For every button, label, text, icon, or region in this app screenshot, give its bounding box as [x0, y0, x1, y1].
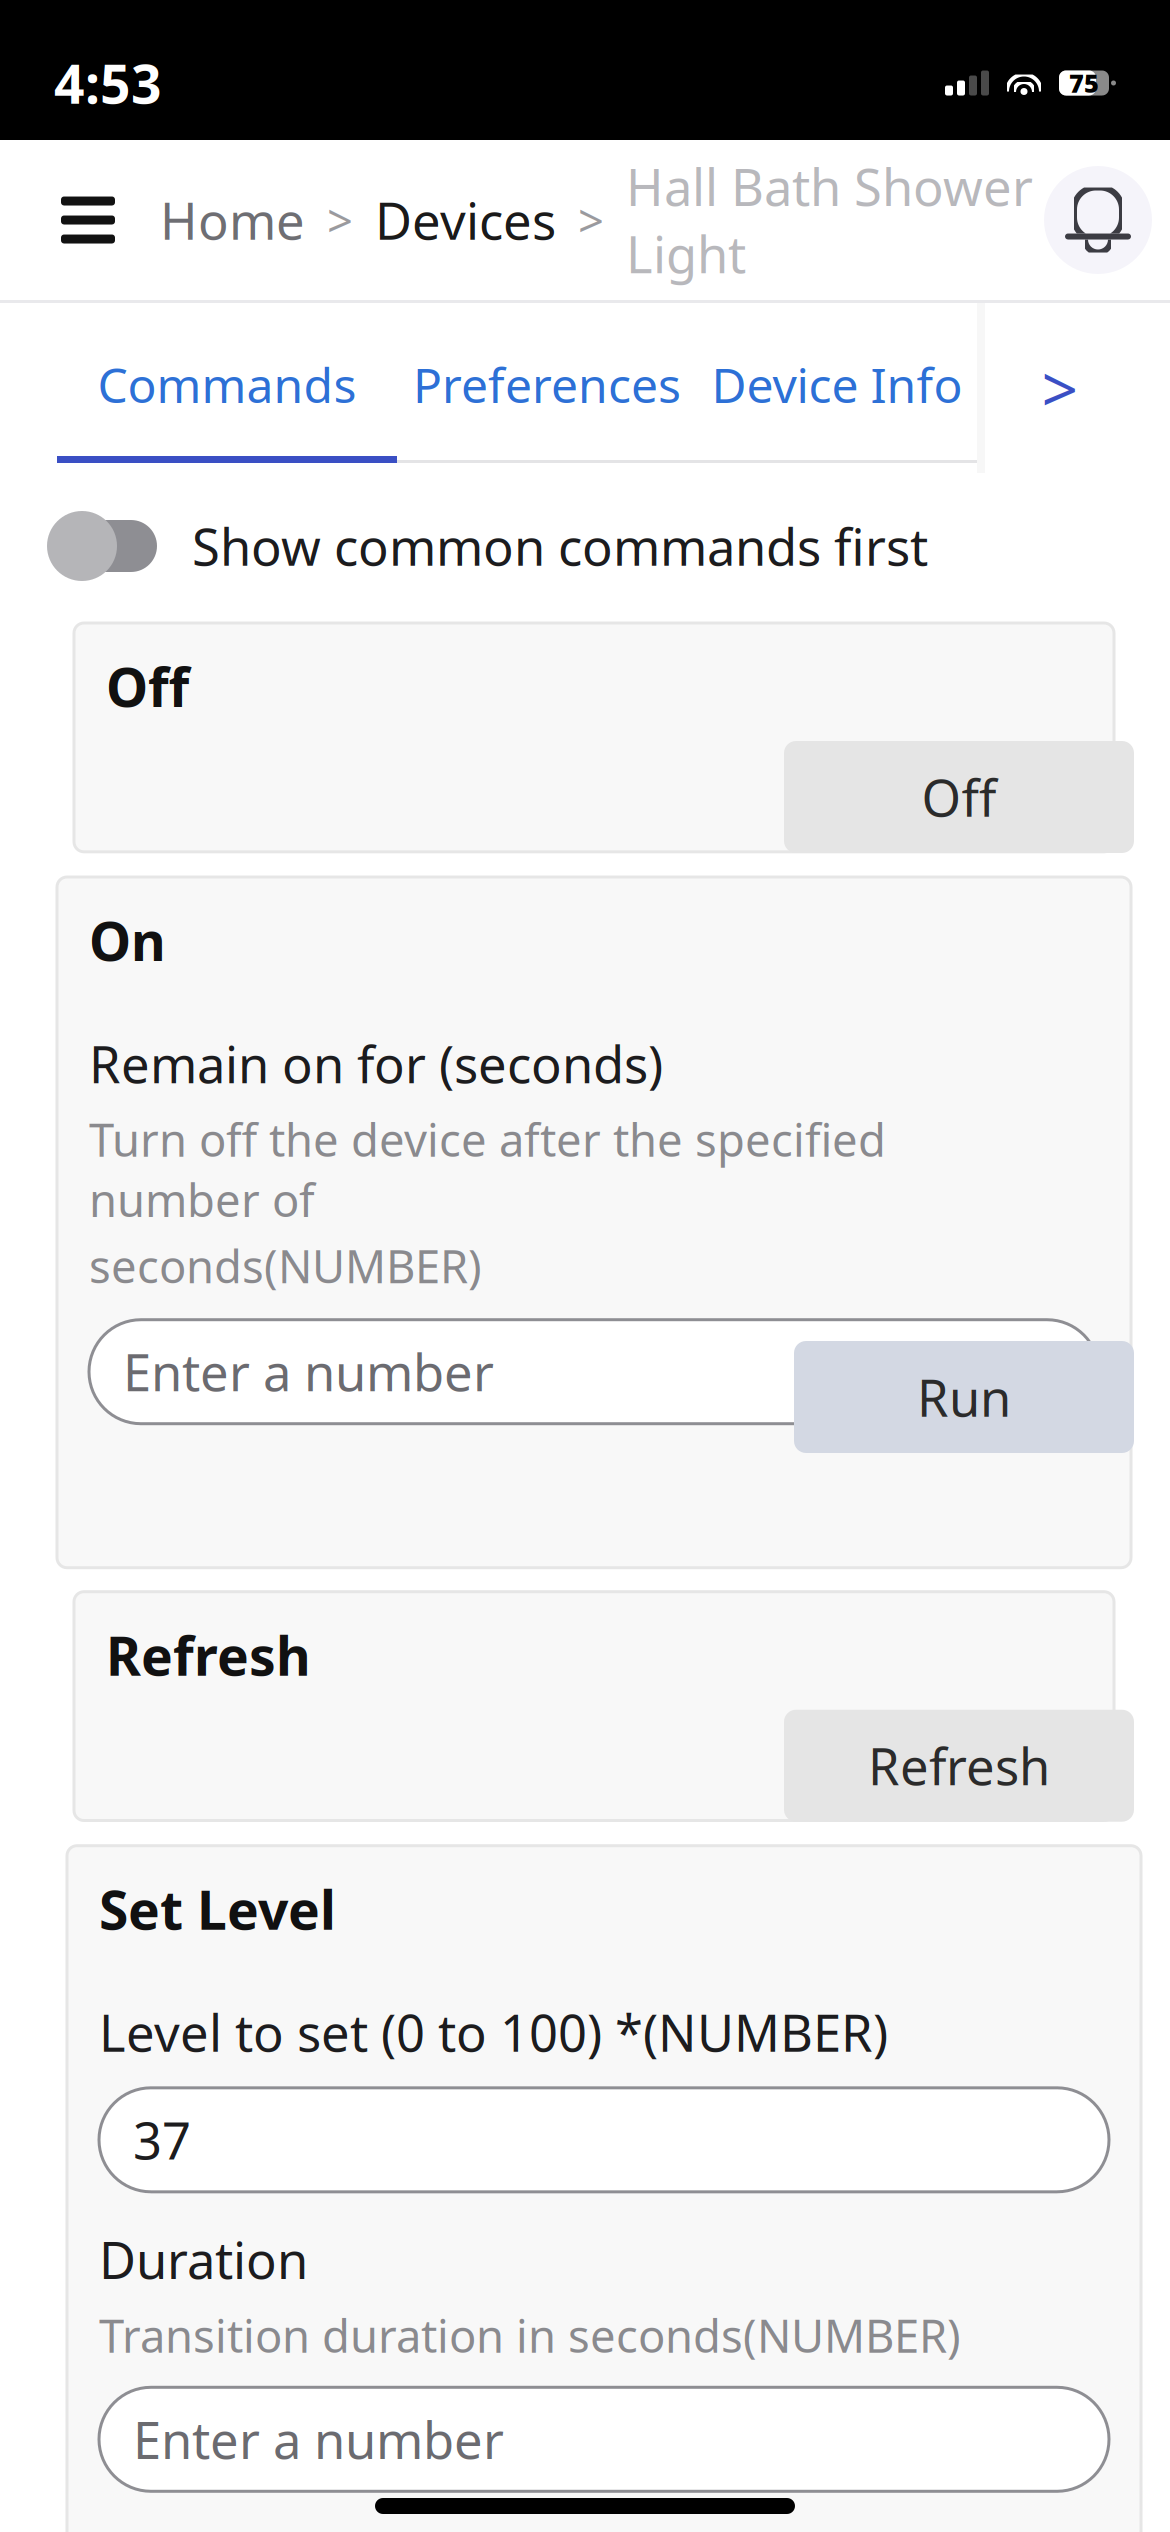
staticText: Off [106, 651, 189, 722]
staticText: On [89, 905, 166, 976]
staticText: Refresh [106, 1620, 311, 1690]
staticText: Device Info [711, 353, 962, 416]
staticText: Refresh [868, 1732, 1050, 1799]
staticText: Set Level [99, 1874, 336, 1944]
staticText: 37 [133, 2106, 191, 2173]
staticText: > [1041, 345, 1078, 430]
staticText: Home [160, 186, 305, 254]
button[interactable]: Home [160, 186, 305, 254]
button[interactable]: Show common commands first [0, 491, 1170, 601]
staticText: Show common commands first [192, 512, 928, 580]
button[interactable]: Devices [375, 186, 556, 254]
staticText: Transition duration in seconds(NUMBER) [99, 2305, 961, 2365]
staticText: seconds(NUMBER) [89, 1235, 482, 1296]
staticText: Devices [375, 186, 556, 254]
button[interactable]: 37 [99, 2088, 1109, 2192]
staticText: Level to set (0 to 100) *(NUMBER) [99, 1998, 888, 2066]
staticText: Enter a number [133, 2406, 504, 2473]
staticText: > [327, 190, 353, 250]
button[interactable]: Enter a number [89, 1320, 1099, 1424]
staticText: Off [921, 763, 996, 831]
staticText: 75 [1069, 66, 1099, 100]
staticText: 4:53 [54, 48, 162, 118]
button[interactable]: Commands [57, 313, 397, 463]
button[interactable]: Device Info [697, 313, 977, 463]
button[interactable]: Preferences [397, 313, 697, 463]
staticText: Remain on for (seconds) [89, 1030, 663, 1097]
button[interactable]: Run [794, 1341, 1134, 1453]
button[interactable]: Refresh [784, 1710, 1134, 1822]
button[interactable]: Enter a number [99, 2387, 1109, 2491]
button[interactable]: Notifications [1044, 166, 1152, 274]
staticText: Enter a number [123, 1338, 494, 1405]
staticText: Preferences [413, 353, 681, 416]
staticText: Duration [99, 2226, 308, 2293]
staticText: Commands [97, 353, 356, 416]
staticText: Run [917, 1363, 1011, 1431]
button[interactable]: More tabs [985, 303, 1135, 473]
button[interactable]: Off [784, 741, 1134, 853]
staticText: Hall Bath Shower Light [626, 153, 1033, 287]
staticText: Turn off the device after the specified … [89, 1109, 886, 1229]
staticText: > [578, 190, 604, 250]
button[interactable]: Menu [38, 170, 138, 270]
